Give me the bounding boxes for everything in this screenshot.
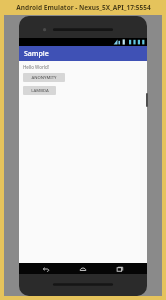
staticText: ANONYMITY (31, 75, 57, 81)
button[interactable]: Recent apps (110, 263, 130, 274)
staticText: LAMBDA (31, 88, 49, 94)
staticText: Sample (24, 49, 49, 59)
button[interactable]: Home (73, 263, 93, 274)
button[interactable]: LAMBDA (23, 86, 56, 95)
staticText: Hello World! (23, 64, 49, 70)
button[interactable]: Back (36, 263, 56, 274)
button[interactable]: ANONYMITY (23, 73, 65, 82)
staticText: Android Emulator - Nexus_5X_API_17:5554 (16, 3, 151, 12)
